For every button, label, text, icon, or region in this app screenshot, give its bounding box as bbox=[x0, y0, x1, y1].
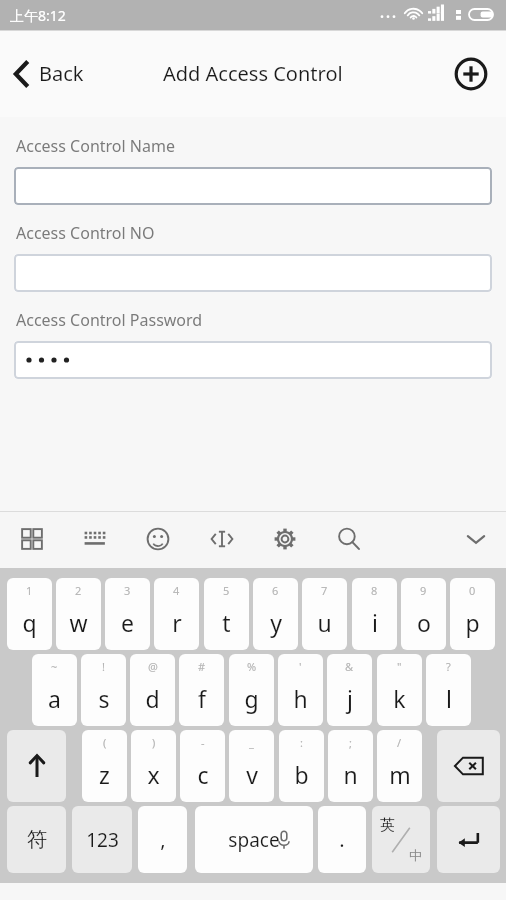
button[interactable]: @ bbox=[130, 654, 175, 726]
staticText: # bbox=[198, 659, 206, 674]
button[interactable] bbox=[14, 254, 492, 292]
staticText: 5 bbox=[223, 583, 230, 598]
button[interactable]: ' bbox=[278, 654, 323, 726]
button[interactable]: Enter bbox=[437, 806, 500, 873]
staticText: k bbox=[393, 683, 406, 714]
staticText: 0 bbox=[469, 583, 476, 598]
staticText: 9 bbox=[420, 583, 427, 598]
button[interactable]: 0 bbox=[450, 578, 495, 650]
staticText: h bbox=[293, 683, 308, 714]
staticText: Add Access Control bbox=[163, 60, 343, 87]
button[interactable]: ( bbox=[82, 730, 127, 802]
staticText: y bbox=[270, 607, 282, 638]
staticText: 符 bbox=[27, 827, 47, 852]
button[interactable]: ~ bbox=[32, 654, 77, 726]
button[interactable]: 5 bbox=[204, 578, 249, 650]
staticText: t bbox=[222, 607, 231, 638]
staticText: d bbox=[145, 683, 160, 714]
button[interactable]: # bbox=[179, 654, 224, 726]
staticText: f bbox=[198, 683, 206, 714]
button[interactable]: Switch language bbox=[372, 806, 430, 873]
staticText: 8 bbox=[371, 583, 378, 598]
staticText: v bbox=[246, 759, 258, 790]
staticText: , bbox=[160, 826, 166, 853]
button[interactable]: 1 bbox=[7, 578, 52, 650]
button[interactable]: _ bbox=[229, 730, 274, 802]
button[interactable]: : bbox=[279, 730, 324, 802]
button[interactable]: Keyboard bbox=[75, 519, 115, 559]
staticText: j bbox=[347, 683, 353, 714]
staticText: g bbox=[244, 683, 259, 714]
staticText: ? bbox=[446, 659, 451, 674]
staticText: 2 bbox=[75, 583, 82, 598]
staticText: r bbox=[172, 607, 182, 638]
staticText: 123 bbox=[86, 827, 119, 853]
staticText: Access Control NO bbox=[16, 222, 155, 244]
button[interactable]: ; bbox=[328, 730, 373, 802]
button[interactable] bbox=[14, 341, 492, 379]
button[interactable]: - bbox=[180, 730, 225, 802]
staticText: Access Control Name bbox=[16, 135, 175, 157]
staticText: z bbox=[99, 759, 110, 790]
button[interactable]: Back bbox=[0, 50, 98, 97]
button[interactable]: Shift bbox=[7, 730, 66, 802]
button[interactable]: 7 bbox=[302, 578, 347, 650]
staticText: 4 bbox=[173, 583, 180, 598]
staticText: o bbox=[417, 607, 431, 638]
staticText: ( bbox=[103, 735, 107, 750]
staticText: 英 bbox=[380, 816, 395, 835]
staticText: c bbox=[197, 759, 209, 790]
staticText: Access Control Password bbox=[16, 309, 203, 331]
staticText: space bbox=[228, 827, 280, 853]
button[interactable]: 2 bbox=[56, 578, 101, 650]
staticText: x bbox=[147, 759, 160, 790]
staticText: & bbox=[345, 659, 354, 674]
button[interactable]: Add bbox=[436, 57, 506, 91]
staticText: ! bbox=[102, 659, 105, 674]
staticText: e bbox=[121, 607, 134, 638]
staticText: i bbox=[372, 607, 378, 638]
staticText: Back bbox=[39, 60, 84, 87]
button[interactable]: ! bbox=[81, 654, 126, 726]
staticText: 中 bbox=[409, 847, 422, 863]
button[interactable]: 4 bbox=[154, 578, 199, 650]
staticText: l bbox=[446, 683, 452, 714]
staticText: s bbox=[98, 683, 110, 714]
button[interactable]: & bbox=[327, 654, 372, 726]
button[interactable]: 3 bbox=[105, 578, 150, 650]
button[interactable]: " bbox=[377, 654, 422, 726]
button[interactable]: ) bbox=[131, 730, 176, 802]
staticText: w bbox=[69, 607, 88, 638]
button[interactable]: 符 bbox=[7, 806, 66, 873]
staticText: . bbox=[339, 826, 345, 853]
staticText: a bbox=[48, 683, 61, 714]
staticText: p bbox=[465, 607, 480, 638]
staticText: ~ bbox=[51, 659, 58, 674]
staticText: 1 bbox=[26, 583, 33, 598]
staticText: ) bbox=[152, 735, 156, 750]
button[interactable]: / bbox=[377, 730, 422, 802]
button[interactable]: Search bbox=[329, 519, 369, 559]
button[interactable]: Backspace bbox=[437, 730, 500, 802]
button[interactable]: 6 bbox=[253, 578, 298, 650]
staticText: _ bbox=[249, 735, 254, 750]
staticText: 上午8:12 bbox=[10, 6, 66, 25]
staticText: 3 bbox=[124, 583, 131, 598]
button[interactable]: 123 bbox=[72, 806, 132, 873]
button[interactable]: . bbox=[318, 806, 366, 873]
button[interactable]: Settings bbox=[265, 519, 305, 559]
staticText: b bbox=[294, 759, 309, 790]
button[interactable]: Emoji bbox=[138, 519, 178, 559]
button[interactable]: , bbox=[138, 806, 187, 873]
button[interactable]: Apps bbox=[12, 519, 52, 559]
button[interactable] bbox=[14, 167, 492, 205]
button[interactable]: 9 bbox=[401, 578, 446, 650]
staticText: " bbox=[397, 659, 402, 674]
button[interactable]: % bbox=[229, 654, 274, 726]
button[interactable]: 8 bbox=[352, 578, 397, 650]
button[interactable]: Hide keyboard bbox=[456, 519, 496, 559]
button[interactable]: Move cursor bbox=[202, 519, 242, 559]
staticText: ' bbox=[299, 659, 302, 674]
button[interactable]: ? bbox=[426, 654, 471, 726]
button[interactable]: space bbox=[195, 806, 313, 873]
